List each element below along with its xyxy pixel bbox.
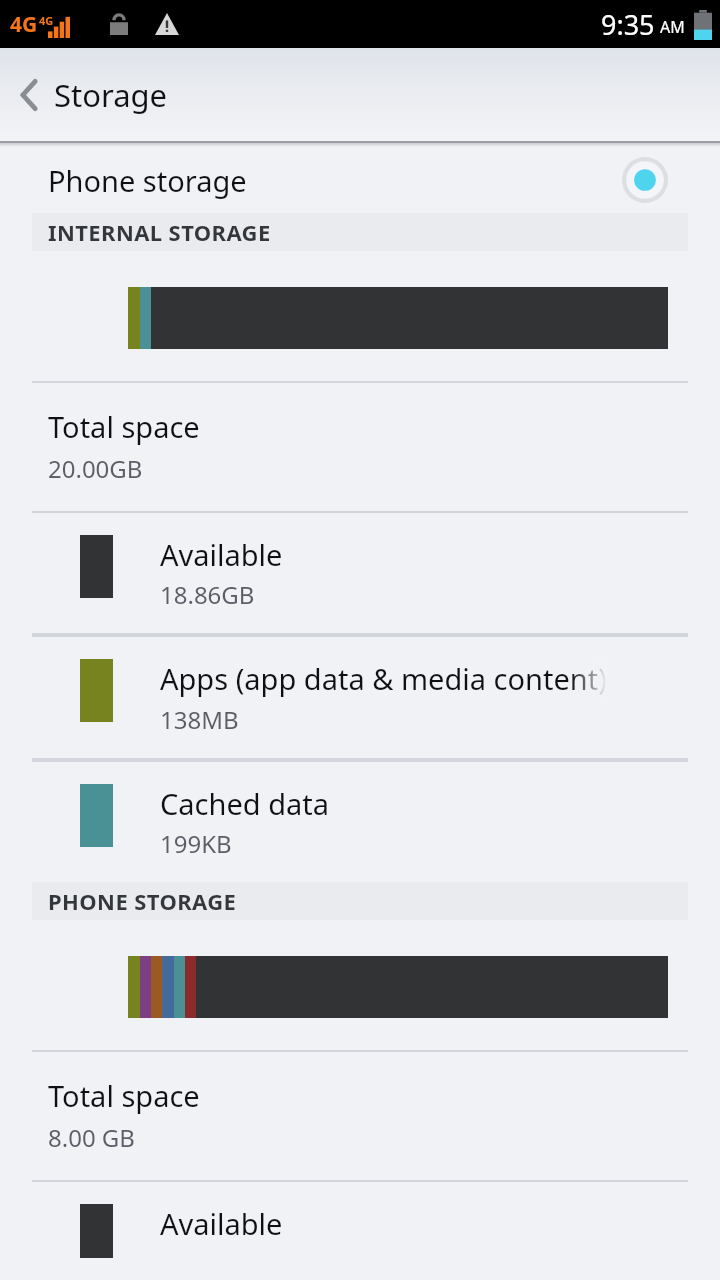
staticText: AM [660,16,685,38]
staticText: Apps (app data & media content) [160,659,607,698]
staticText: 18.86GB [160,578,255,611]
button[interactable]: Back to Storage [0,48,720,141]
staticText: 199KB [160,827,232,860]
staticText: 4G [10,10,38,39]
button[interactable]: Cached data [0,762,720,882]
staticText: PHONE STORAGE [48,886,237,916]
staticText: Total space [48,1076,200,1115]
staticText: Available [160,535,283,574]
button[interactable]: Apps (app data & media content) [0,637,720,758]
staticText: 20.00GB [48,452,143,485]
staticText: Phone storage [48,161,247,200]
staticText: 4G [39,13,54,28]
staticText: Cached data [160,784,330,823]
button[interactable]: Total space [0,383,720,511]
staticText: 138MB [160,703,239,736]
other: Phone storage selected [622,157,668,203]
staticText: 8.00 GB [48,1121,135,1154]
button[interactable]: Total space [0,1052,720,1180]
button[interactable]: Available [0,1182,720,1280]
staticText: 9:35 [601,6,655,43]
button[interactable]: Available [0,513,720,633]
staticText: Total space [48,407,200,446]
button[interactable]: Phone storage [0,147,720,213]
staticText: Available [160,1204,283,1243]
staticText: INTERNAL STORAGE [48,217,271,247]
staticText: Storage [54,74,168,116]
